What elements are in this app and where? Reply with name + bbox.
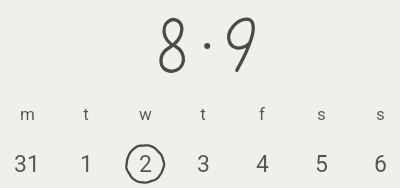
staticText: 31 [14, 151, 40, 178]
button[interactable]: w [116, 100, 174, 188]
staticText: 1 [80, 151, 93, 178]
staticText: t [83, 104, 89, 124]
button[interactable]: t [174, 100, 232, 188]
staticText: 3 [197, 151, 210, 178]
staticText: 5 [315, 151, 328, 178]
staticText: 6 [374, 151, 387, 178]
button[interactable]: Date 8 September [140, 10, 275, 80]
button[interactable]: m [0, 100, 56, 188]
button[interactable]: f [233, 100, 291, 188]
button[interactable]: s [351, 100, 400, 188]
staticText: s [376, 104, 385, 124]
button[interactable]: t [57, 100, 115, 188]
staticText: 2 [139, 151, 152, 178]
staticText: f [259, 104, 265, 124]
staticText: w [139, 104, 152, 124]
staticText: 4 [256, 151, 269, 178]
staticText: t [200, 104, 206, 124]
staticText: s [317, 104, 326, 124]
staticText: m [20, 104, 35, 124]
button[interactable]: s [292, 100, 350, 188]
